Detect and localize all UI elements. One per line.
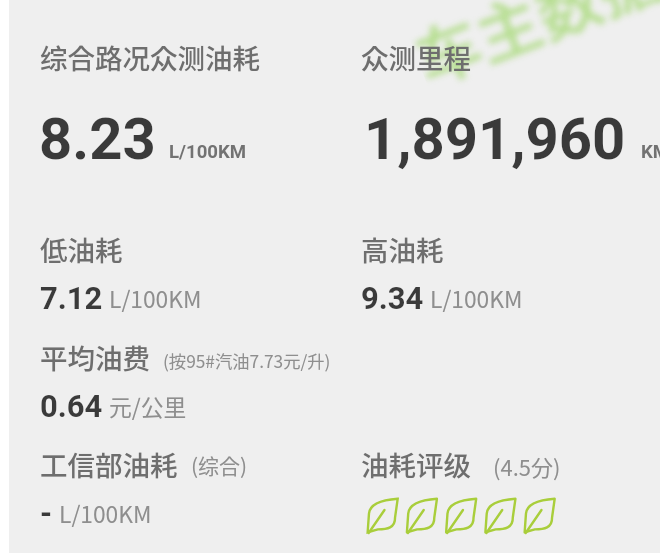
staticText: (4.5分) [493, 450, 561, 482]
staticText: 低油耗 [40, 229, 123, 269]
button[interactable]: 低油耗 [40, 229, 123, 269]
staticText: (按95#汽油7.73元/升) [163, 348, 331, 373]
staticText: KM [641, 141, 660, 163]
staticText: 7.12 [40, 280, 103, 316]
staticText: 0.64 [40, 388, 103, 424]
staticText: 9.34 [361, 280, 424, 316]
button[interactable]: 油耗评级 [361, 444, 561, 484]
staticText: L/100KM [169, 141, 247, 163]
button[interactable]: 工信部油耗 [40, 444, 248, 484]
staticText: 车主数据体 [401, 0, 660, 103]
staticText: (综合) [191, 450, 248, 480]
staticText: 元/公里 [109, 390, 187, 423]
staticText: L/100KM [59, 497, 152, 530]
staticText: 众测里程 [361, 37, 471, 77]
staticText: L/100KM [109, 282, 202, 315]
staticText: L/100KM [430, 282, 523, 315]
button[interactable]: 平均油费 [40, 337, 331, 377]
button[interactable]: 高油耗 [361, 229, 444, 269]
staticText: 平均油费 [40, 337, 150, 377]
staticText: 高油耗 [361, 229, 444, 269]
staticText: 1,891,960 [364, 105, 626, 173]
button[interactable]: Fuel economy rating: 4.5 out of 5 [366, 497, 556, 533]
staticText: 综合路况众测油耗 [40, 37, 260, 77]
button[interactable]: 综合路况众测油耗 [40, 37, 260, 77]
staticText: - [40, 495, 53, 531]
staticText: 工信部油耗 [40, 444, 178, 484]
button[interactable]: 众测里程 [361, 37, 471, 77]
staticText: 油耗评级 [361, 444, 471, 484]
staticText: 8.23 [39, 105, 156, 173]
